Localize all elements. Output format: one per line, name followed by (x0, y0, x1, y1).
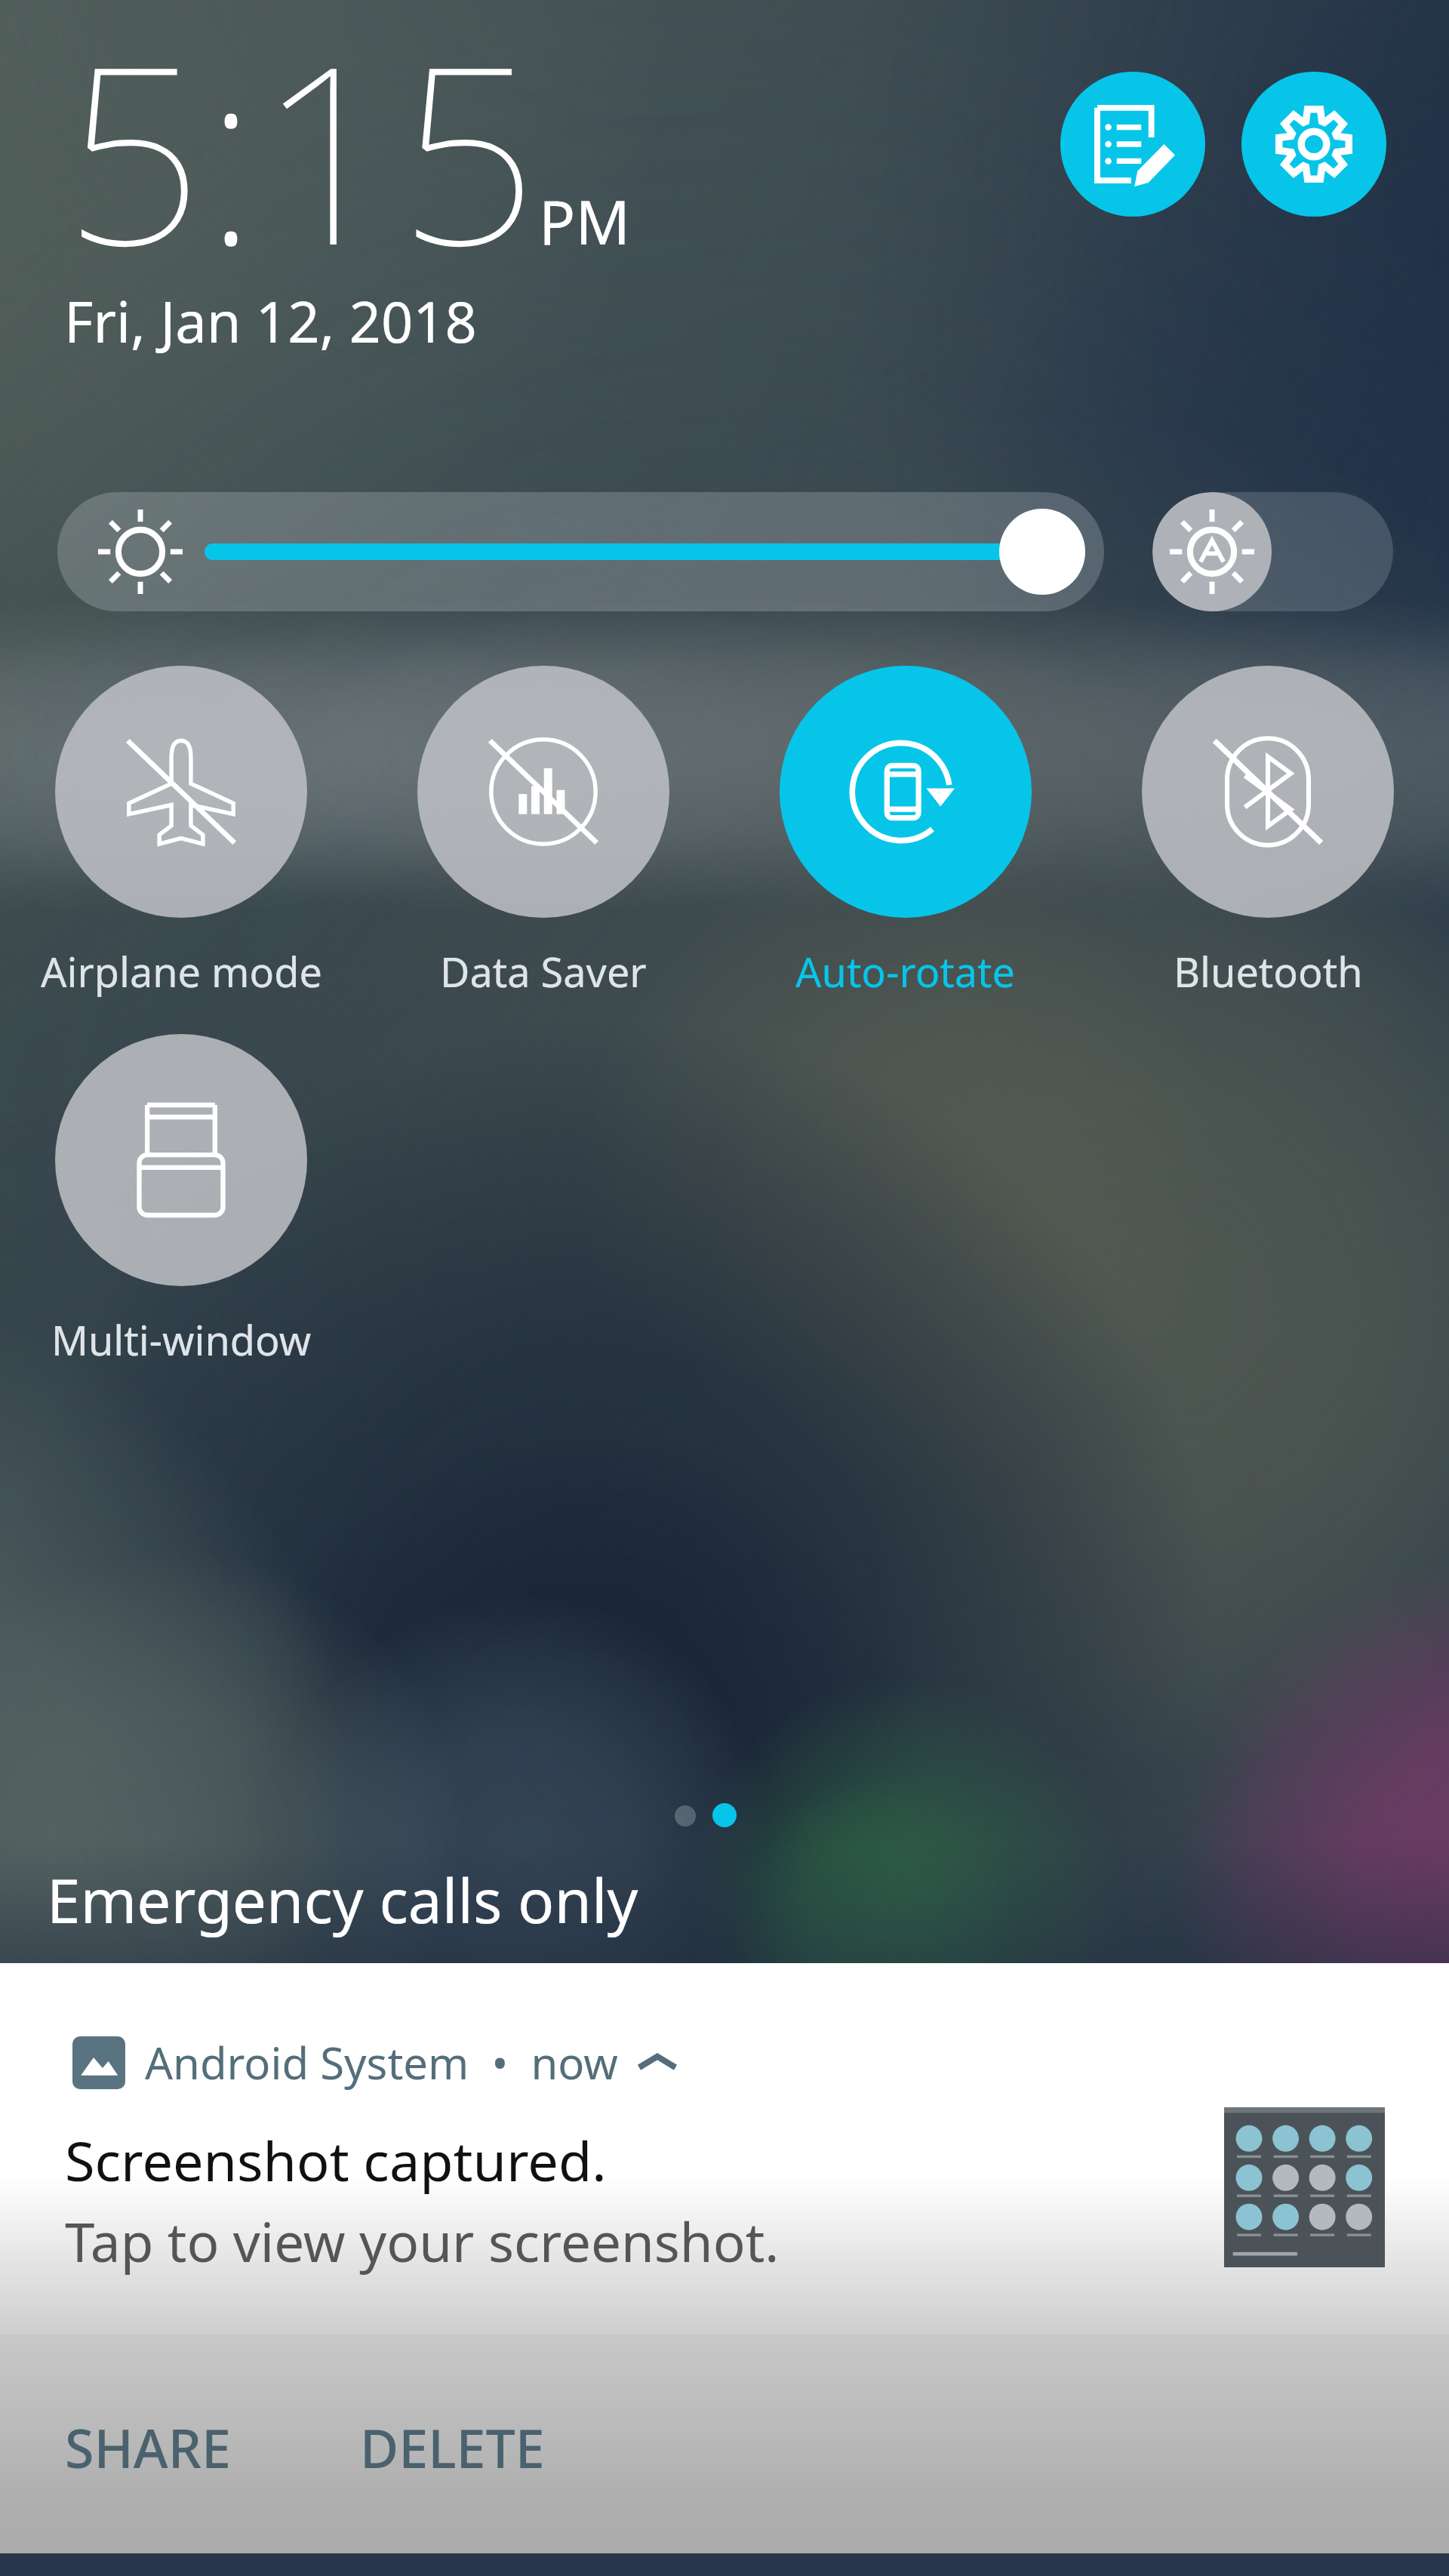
button[interactable]: Brightness (57, 492, 1104, 611)
button[interactable]: Settings (1241, 72, 1386, 217)
button[interactable]: SHARE (65, 2411, 231, 2483)
staticText: Fri, Jan 12, 2018 (64, 283, 477, 359)
button[interactable]: Edit quick settings (1060, 72, 1205, 217)
staticText: Auto-rotate (795, 943, 1016, 999)
staticText: DELETE (360, 2411, 545, 2483)
button[interactable]: Bluetooth (1087, 666, 1449, 999)
staticText: Screenshot captured. (65, 2123, 607, 2197)
button[interactable]: Auto brightness (1152, 492, 1393, 611)
button[interactable]: Data Saver (362, 666, 724, 999)
button[interactable]: Android System • now (0, 1963, 1449, 2334)
staticText: PM (539, 180, 630, 262)
staticText: Data Saver (440, 943, 647, 999)
staticText: Emergency calls only (47, 1858, 638, 1940)
staticText: 5:15 (63, 0, 539, 317)
button[interactable]: Airplane mode (0, 666, 362, 999)
button[interactable]: Auto-rotate (724, 666, 1087, 999)
button[interactable]: Multi-window (0, 1034, 362, 1368)
button[interactable]: DELETE (360, 2411, 545, 2483)
staticText: Airplane mode (41, 943, 322, 999)
staticText: SHARE (65, 2411, 231, 2483)
staticText: Bluetooth (1174, 943, 1363, 999)
staticText: Tap to view your screenshot. (65, 2205, 780, 2278)
staticText: Android System • now (145, 2033, 618, 2092)
staticText: Multi-window (51, 1312, 312, 1368)
